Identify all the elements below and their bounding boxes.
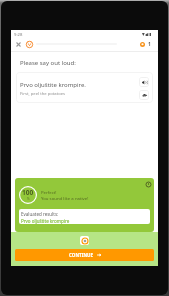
staticText: You sound like a native! <box>41 195 89 201</box>
staticText: CONTINUE <box>69 252 93 258</box>
staticText: Prvo oljuštite krompire <box>21 218 70 224</box>
staticText: 9:28 <box>14 32 23 38</box>
staticText: Please say out loud: <box>20 59 76 67</box>
staticText: Prvo oljuštite krompire. <box>20 81 86 89</box>
button[interactable]: Play slow audio <box>139 90 149 100</box>
staticText: First, peel the potatoes <box>20 91 66 97</box>
staticText: 100 <box>22 188 34 197</box>
staticText: 1 <box>148 41 151 48</box>
button[interactable]: Prvo oljuštite krompire. <box>16 72 153 103</box>
button[interactable]: Report <box>144 180 152 188</box>
staticText: Evaluated results: <box>21 211 59 217</box>
button[interactable]: Microphone <box>80 236 89 245</box>
button[interactable]: Close <box>13 39 24 50</box>
button[interactable]: 1 <box>139 41 152 48</box>
staticText: % <box>27 197 30 201</box>
button[interactable]: Play audio <box>139 77 149 87</box>
button[interactable]: Mascot <box>25 40 34 49</box>
staticText: Perfect! <box>41 189 57 195</box>
button[interactable]: CONTINUE <box>15 249 154 261</box>
